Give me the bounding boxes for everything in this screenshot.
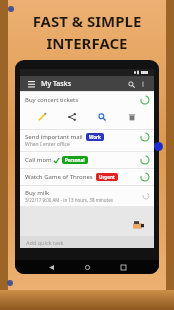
staticText: 3/22/17 9:00 AM - in 13 hours, 38 minute… [25,197,113,203]
staticText: Personal [65,157,85,163]
button[interactable]: Search web [94,109,110,125]
staticText: Buy milk [25,189,50,197]
staticText: When I enter office [25,141,70,148]
button[interactable]: Search [125,78,137,90]
staticText: Work [89,134,101,140]
staticText: Buy concert tickets [25,96,79,104]
button[interactable]: Edit [34,109,50,125]
button[interactable]: Delete [124,109,140,125]
staticText: Send important mail [25,133,83,141]
staticText: Watch Game of Thrones [25,173,93,181]
button[interactable]: Buy concert tickets [20,92,154,129]
button[interactable]: Open navigation menu [25,78,37,90]
staticText: INTERFACE [0,33,174,53]
staticText: Call mom [25,156,52,164]
staticText: My Tasks [41,79,72,89]
button[interactable]: Watch Game of Thrones [20,169,154,185]
button[interactable]: Share [64,109,80,125]
button[interactable]: Back [44,260,58,274]
staticText: Urgent [99,174,115,180]
button[interactable]: Add quick task [20,236,154,248]
button[interactable]: Buy milk [20,186,154,206]
button[interactable]: More options [137,78,149,90]
button[interactable]: Call mom [20,152,154,168]
button[interactable]: Home [80,260,94,274]
button[interactable]: Send important mail [20,130,154,151]
staticText: Add quick task [26,239,64,246]
button[interactable]: Recents [116,260,130,274]
staticText: FAST & SIMPLE [0,11,174,31]
button[interactable]: Add task [132,218,145,231]
